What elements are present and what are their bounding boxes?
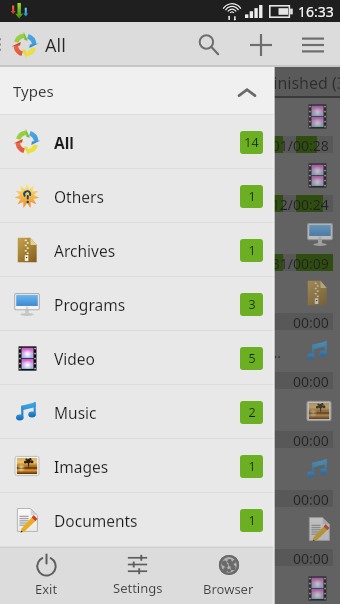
button[interactable]: Open navigation drawer [0,22,9,67]
button[interactable]: Music [0,385,274,439]
staticText: 2 [248,404,256,421]
staticText: Exit [35,580,58,598]
staticText: 5 [248,350,256,367]
button[interactable]: Documents [0,493,274,547]
staticText: Others [54,186,104,207]
button[interactable]: Browser [183,547,274,604]
button[interactable]: Images [0,439,274,493]
staticText: 1 [248,512,256,529]
button[interactable]: Types [0,67,274,115]
staticText: 00:00 [293,431,329,448]
staticText: 1 [248,242,256,259]
staticText: Types [13,81,54,101]
staticText: 1 [248,458,256,475]
button[interactable]: Settings [92,547,183,604]
staticText: Music [54,402,97,423]
button[interactable]: Add new download [237,22,285,67]
staticText: 1:12/00:24 [260,195,329,212]
staticText: a... [262,343,282,362]
staticText: 14 [244,134,259,151]
button[interactable]: All [0,115,274,169]
staticText: Browser [203,580,254,598]
button[interactable]: Archives [0,223,274,277]
staticText: Settings [113,579,163,597]
staticText: 0:31/00:09 [260,254,329,271]
staticText: Finished (3) [265,72,340,94]
button[interactable]: Video [0,331,274,385]
button[interactable]: Programs [0,277,274,331]
staticText: Archives [54,240,116,261]
staticText: 3 [248,296,256,313]
staticText: All [54,132,74,153]
button[interactable]: More options [289,22,337,67]
staticText: Documents [54,510,138,531]
staticText: 00:00 [293,372,329,389]
staticText: Video [54,348,95,369]
staticText: 00:00 [293,549,329,566]
button[interactable]: Others [0,169,274,223]
staticText: All [45,33,66,58]
staticText: 00:00 [293,490,329,507]
staticText: 00:00 [293,313,329,330]
staticText: 1 [248,188,256,205]
button[interactable]: Search [184,22,232,67]
staticText: Programs [54,294,126,315]
staticText: 16:33 [298,2,334,21]
button[interactable]: Exit [0,547,92,604]
staticText: 1:01/00:28 [260,136,329,153]
staticText: Images [54,456,109,477]
